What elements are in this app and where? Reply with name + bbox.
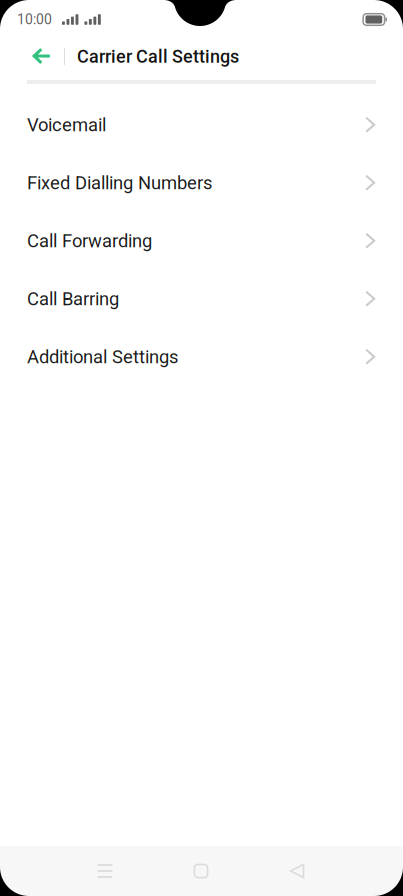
button[interactable]: Call Forwarding <box>0 212 403 270</box>
button[interactable]: Voicemail <box>0 96 403 154</box>
staticText: Voicemail <box>27 114 106 136</box>
button[interactable]: Additional Settings <box>0 328 403 386</box>
button[interactable]: Back <box>20 34 64 78</box>
button[interactable]: Fixed Dialling Numbers <box>0 154 403 212</box>
staticText: Fixed Dialling Numbers <box>27 172 212 194</box>
staticText: Additional Settings <box>27 346 178 368</box>
staticText: Carrier Call Settings <box>77 46 239 67</box>
staticText: Call Barring <box>27 288 119 310</box>
staticText: Call Forwarding <box>27 230 152 252</box>
button[interactable]: Home <box>153 846 249 896</box>
button[interactable]: Recent apps <box>57 846 153 896</box>
button[interactable]: Call Barring <box>0 270 403 328</box>
staticText: 10:00 <box>17 11 52 28</box>
